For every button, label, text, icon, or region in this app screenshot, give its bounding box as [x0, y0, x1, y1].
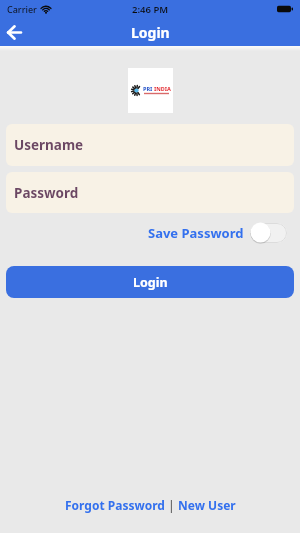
- staticText: Password: [14, 184, 79, 202]
- staticText: PRI: [143, 85, 153, 92]
- staticText: INDIA: [154, 85, 171, 92]
- staticText: Forgot Password: [65, 497, 165, 513]
- staticText: Carrier: [7, 3, 37, 15]
- staticText: Save Password: [148, 224, 244, 242]
- staticText: Login: [133, 274, 168, 291]
- staticText: Login: [131, 23, 170, 42]
- staticText: Username: [14, 136, 84, 154]
- staticText: New User: [178, 497, 236, 513]
- staticText: 2:46 PM: [132, 3, 169, 16]
- staticText: |: [165, 497, 178, 513]
